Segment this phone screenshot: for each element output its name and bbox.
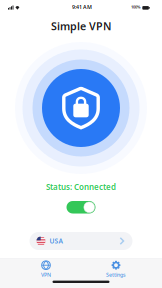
staticText: Status: Connected [46,182,116,192]
staticText: USA [49,237,62,245]
staticText: Settings [106,271,126,278]
staticText: 9:41 AM [72,3,92,11]
button[interactable]: USA [29,232,132,250]
staticText: 100% [131,4,141,10]
button[interactable]: VPN [19,261,73,278]
staticText: Simple VPN [51,19,111,33]
button[interactable]: Settings [89,261,143,278]
button[interactable]: VPN connection toggle [66,201,95,213]
staticText: VPN [41,271,51,278]
